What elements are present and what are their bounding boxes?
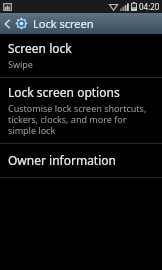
- button[interactable]: Lock screen options: [0, 78, 162, 143]
- staticText: Screen lock: [8, 40, 72, 56]
- staticText: Swipe: [8, 58, 33, 70]
- staticText: Owner information: [8, 152, 116, 168]
- staticText: 04:20: [139, 1, 160, 12]
- staticText: Customise lock screen shortcuts, tickers…: [8, 102, 154, 136]
- staticText: Lock screen: [33, 16, 94, 31]
- button[interactable]: Screen lock: [0, 34, 162, 77]
- button[interactable]: Owner information: [0, 144, 162, 177]
- button[interactable]: Back: [0, 13, 162, 34]
- staticText: Lock screen options: [8, 84, 120, 100]
